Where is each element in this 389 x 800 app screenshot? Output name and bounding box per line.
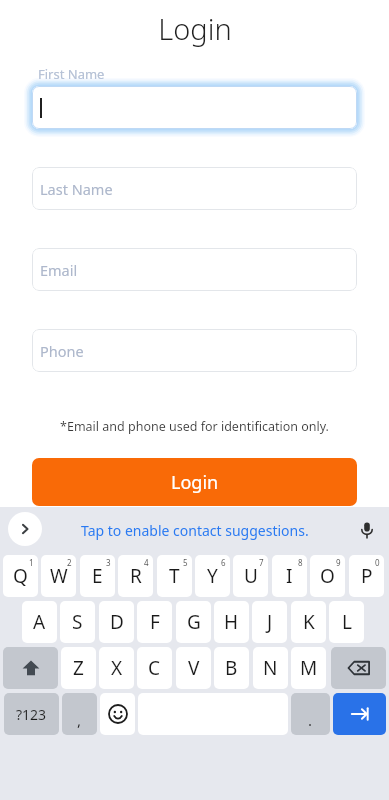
button[interactable]: X [99, 647, 134, 689]
staticText: G [187, 609, 201, 635]
staticText: U [244, 563, 258, 589]
staticText: 4 [144, 557, 149, 568]
button[interactable]: U [233, 555, 268, 597]
staticText: Tap to enable contact suggestions. [81, 521, 309, 540]
staticText: 9 [336, 557, 341, 568]
staticText: M [300, 655, 318, 681]
button[interactable]: O [310, 555, 345, 597]
button[interactable]: R [118, 555, 153, 597]
staticText: X [111, 655, 123, 681]
button[interactable]: N [253, 647, 288, 689]
button[interactable]: H [214, 601, 249, 643]
staticText: 7 [259, 557, 264, 568]
button[interactable]: W [41, 555, 76, 597]
button[interactable]: Shift [3, 647, 58, 689]
staticText: I [286, 563, 293, 589]
button[interactable]: Phone [32, 329, 357, 372]
staticText: 0 [375, 557, 380, 568]
staticText: Y [207, 563, 218, 589]
staticText: A [33, 609, 46, 635]
staticText: W [50, 563, 68, 589]
button[interactable]: Login [32, 458, 357, 506]
staticText: L [342, 609, 352, 635]
button[interactable]: . [291, 693, 330, 735]
button[interactable]: Last Name [32, 167, 357, 210]
staticText: Q [13, 563, 28, 589]
staticText: V [188, 655, 200, 681]
button[interactable]: Email [32, 248, 357, 291]
staticText: 1 [29, 557, 34, 568]
staticText: 2 [67, 557, 72, 568]
staticText: , [77, 710, 82, 730]
staticText: F [150, 609, 160, 635]
button[interactable]: Y [195, 555, 230, 597]
staticText: Login [158, 9, 232, 48]
button[interactable]: F [137, 601, 172, 643]
button[interactable]: ?123 [4, 693, 59, 735]
staticText: P [361, 563, 373, 589]
button[interactable]: S [60, 601, 95, 643]
staticText: R [130, 563, 142, 589]
staticText: Login [171, 470, 219, 495]
button[interactable]: I [272, 555, 307, 597]
staticText: N [263, 655, 278, 681]
staticText: T [169, 563, 180, 589]
staticText: Z [73, 655, 84, 681]
button[interactable]: G [176, 601, 211, 643]
staticText: O [320, 563, 335, 589]
button[interactable]: L [329, 601, 364, 643]
staticText: J [267, 609, 273, 635]
staticText: C [148, 655, 161, 681]
staticText: H [224, 609, 239, 635]
button[interactable]: Tap to enable contact suggestions. [0, 507, 389, 553]
staticText: . [308, 710, 313, 730]
staticText: 6 [221, 557, 226, 568]
button[interactable]: P [349, 555, 384, 597]
staticText: Phone [40, 341, 84, 361]
staticText: Last Name [40, 179, 113, 199]
staticText: 8 [298, 557, 303, 568]
button[interactable]: V [176, 647, 211, 689]
button[interactable]: M [291, 647, 326, 689]
button[interactable]: E [80, 555, 115, 597]
staticText: 3 [106, 557, 111, 568]
button[interactable]: Voice input [355, 518, 379, 542]
staticText: Email [40, 260, 78, 280]
staticText: 5 [183, 557, 188, 568]
staticText: D [110, 609, 124, 635]
button[interactable]: T [157, 555, 192, 597]
staticText: S [72, 609, 83, 635]
button[interactable]: , [62, 693, 97, 735]
button[interactable]: D [99, 601, 134, 643]
staticText: E [92, 563, 103, 589]
button[interactable]: K [291, 601, 326, 643]
staticText: ?123 [16, 705, 47, 724]
staticText: First Name [38, 65, 105, 83]
button[interactable]: Z [61, 647, 96, 689]
button[interactable]: J [252, 601, 287, 643]
button[interactable]: Q [3, 555, 38, 597]
button[interactable]: A [22, 601, 57, 643]
staticText: K [303, 609, 315, 635]
button[interactable] [32, 86, 357, 129]
staticText: B [225, 655, 238, 681]
button[interactable]: Enter [333, 693, 386, 735]
staticText: *Email and phone used for identification… [60, 418, 329, 435]
button[interactable]: Emoji [100, 693, 135, 735]
button[interactable]: B [214, 647, 249, 689]
button[interactable]: C [137, 647, 172, 689]
button[interactable]: Backspace [331, 647, 386, 689]
button[interactable]: Expand suggestions [8, 512, 42, 546]
